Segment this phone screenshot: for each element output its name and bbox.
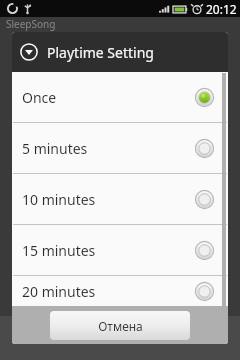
staticText: Отмена: [98, 318, 143, 334]
staticText: 5 minutes: [22, 139, 88, 158]
staticText: 20 minutes: [22, 282, 96, 301]
button[interactable]: 15 minutes: [12, 225, 228, 275]
button[interactable]: Once: [12, 72, 228, 122]
staticText: 15 minutes: [22, 241, 96, 260]
staticText: 20:12: [206, 1, 237, 17]
button[interactable]: 10 minutes: [12, 174, 228, 224]
staticText: SleepSong: [6, 17, 56, 31]
button[interactable]: Отмена: [50, 311, 190, 340]
staticText: Once: [22, 88, 57, 107]
button[interactable]: 5 minutes: [12, 123, 228, 173]
button[interactable]: 20 minutes: [12, 276, 228, 306]
staticText: Playtime Setting: [47, 43, 154, 62]
button[interactable]: Playtime Setting: [12, 32, 228, 72]
staticText: 10 minutes: [22, 190, 96, 209]
